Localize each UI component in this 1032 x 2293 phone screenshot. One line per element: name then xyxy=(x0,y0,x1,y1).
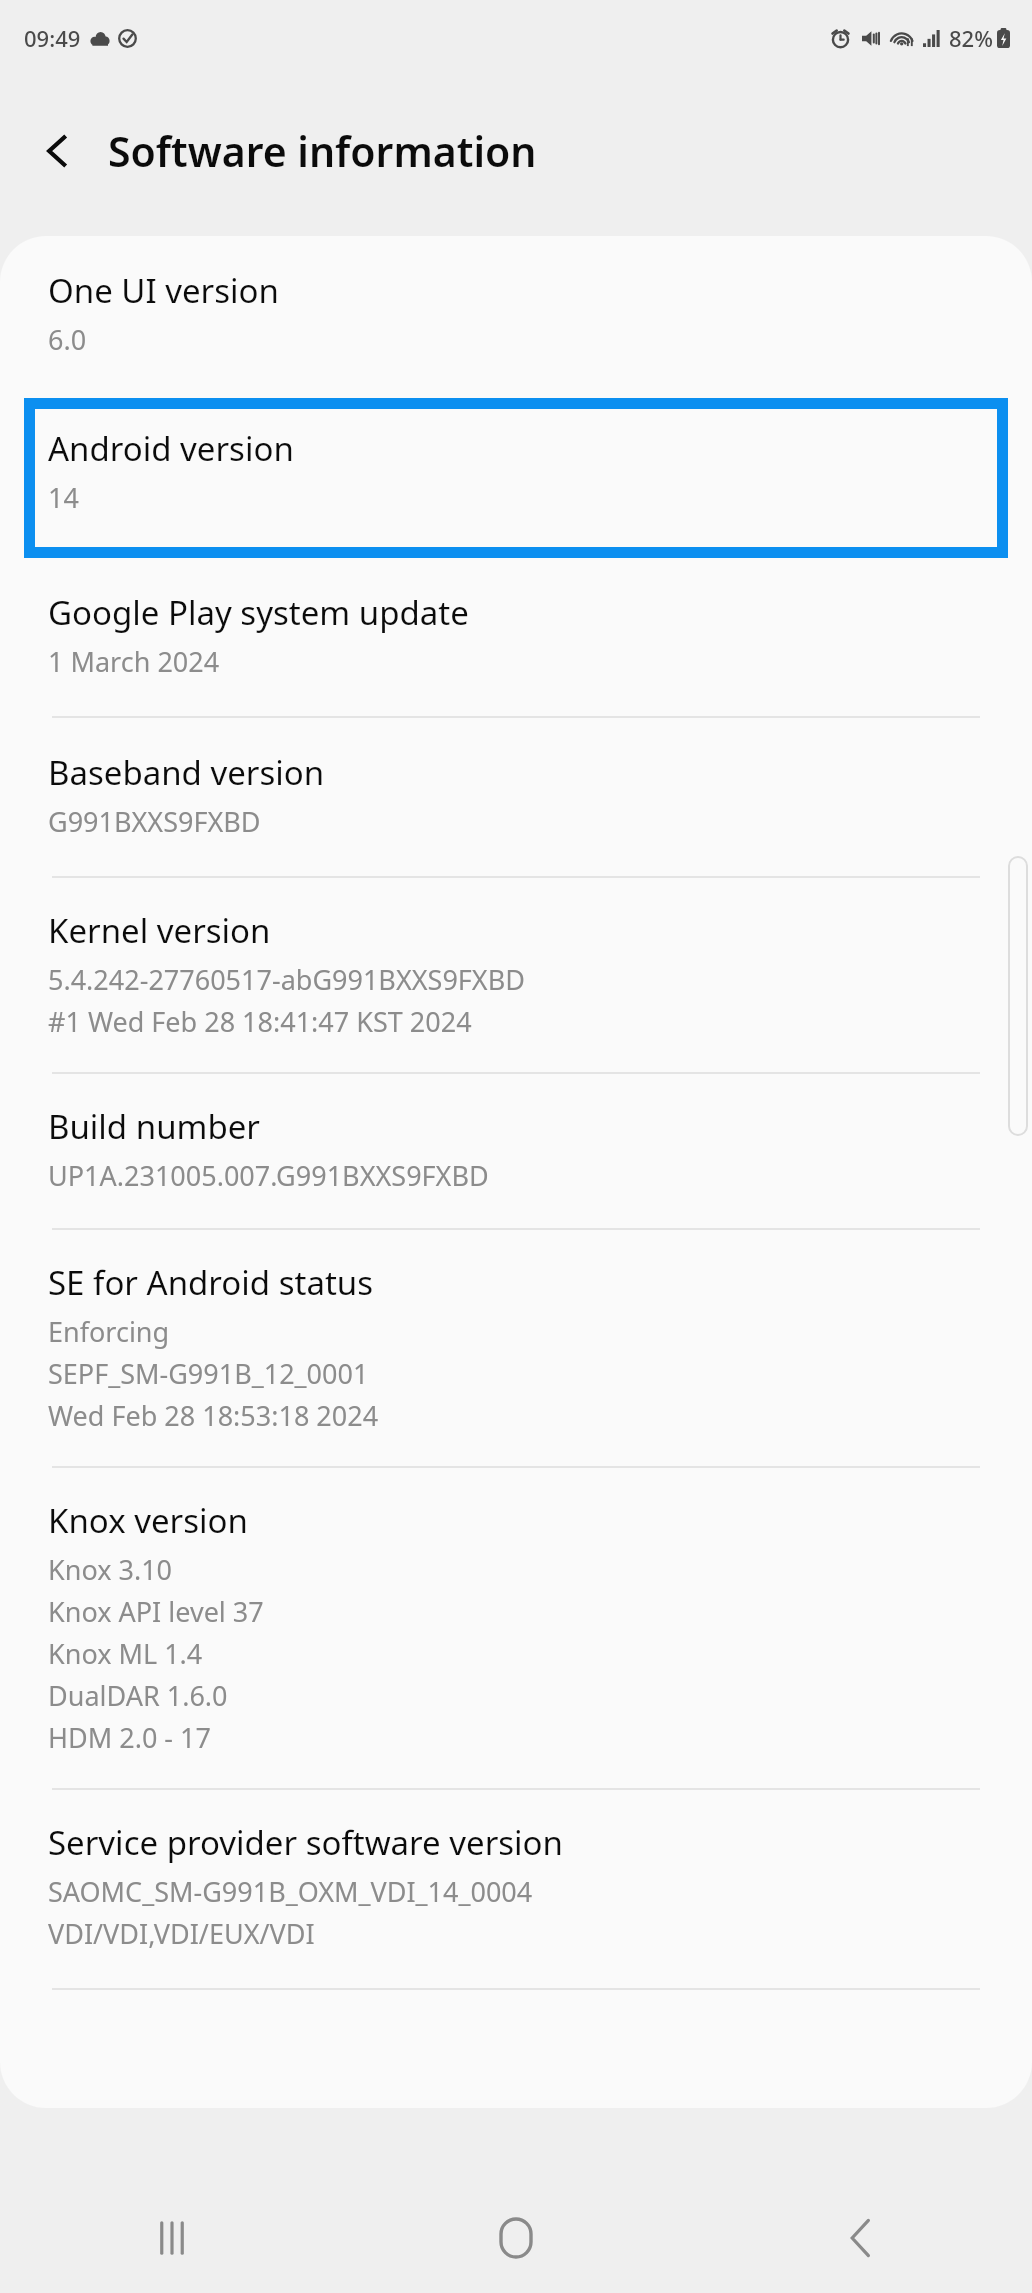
button[interactable]: Recents xyxy=(0,2183,344,2293)
staticText: 5.4.242-27760517-abG991BXXS9FXBD xyxy=(48,961,525,998)
button[interactable]: One UI version xyxy=(0,236,1032,398)
button[interactable]: Android version xyxy=(24,398,1008,558)
button[interactable]: Google Play system update xyxy=(0,558,1032,718)
staticText: Knox API level 37 xyxy=(48,1593,264,1630)
staticText: SE for Android status xyxy=(48,1260,374,1305)
staticText: SEPF_SM-G991B_12_0001 xyxy=(48,1355,369,1392)
staticText: 82% xyxy=(949,23,993,53)
staticText: Enforcing xyxy=(48,1313,170,1350)
staticText: Baseband version xyxy=(48,750,325,795)
staticText: One UI version xyxy=(48,268,279,313)
staticText: SAOMC_SM-G991B_OXM_VDI_14_0004 xyxy=(48,1873,533,1910)
staticText: #1 Wed Feb 28 18:41:47 KST 2024 xyxy=(48,1003,472,1040)
button[interactable]: Knox version xyxy=(0,1468,1032,1790)
staticText: DualDAR 1.6.0 xyxy=(48,1677,228,1714)
staticText: Knox ML 1.4 xyxy=(48,1635,203,1672)
staticText: Software information xyxy=(108,123,537,179)
staticText: G991BXXS9FXBD xyxy=(48,803,261,840)
button[interactable]: Service provider software version xyxy=(0,1790,1032,1990)
staticText: Kernel version xyxy=(48,908,271,953)
staticText: Service provider software version xyxy=(48,1820,563,1865)
staticText: 09:49 xyxy=(24,23,81,53)
staticText: Build number xyxy=(48,1104,260,1149)
staticText: 1 March 2024 xyxy=(48,643,220,680)
button[interactable]: SE for Android status xyxy=(0,1230,1032,1468)
staticText: VDI/VDI,VDI/EUX/VDI xyxy=(48,1915,315,1952)
button[interactable]: Back xyxy=(22,115,94,187)
staticText: 6.0 xyxy=(48,321,87,358)
staticText: HDM 2.0 - 17 xyxy=(48,1719,211,1756)
button[interactable]: Build number xyxy=(0,1074,1032,1230)
staticText: UP1A.231005.007.G991BXXS9FXBD xyxy=(48,1157,489,1194)
staticText: Knox version xyxy=(48,1498,248,1543)
staticText: Android version xyxy=(48,426,294,471)
button[interactable]: Home xyxy=(344,2183,688,2293)
button[interactable]: Back xyxy=(688,2183,1032,2293)
staticText: Wed Feb 28 18:53:18 2024 xyxy=(48,1397,379,1434)
staticText: Knox 3.10 xyxy=(48,1551,173,1588)
button[interactable]: Kernel version xyxy=(0,878,1032,1074)
staticText: 14 xyxy=(48,479,79,516)
button[interactable]: Baseband version xyxy=(0,718,1032,878)
staticText: Google Play system update xyxy=(48,590,469,635)
